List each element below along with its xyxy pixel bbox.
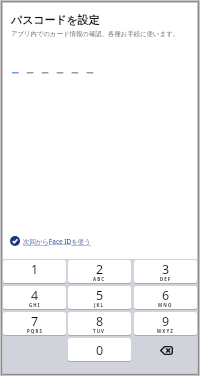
staticText: 5 [96,287,104,304]
staticText: 2 [96,261,104,278]
staticText: TUV [93,328,106,334]
staticText: 7 [31,313,39,330]
button[interactable]: 5 [68,286,131,309]
staticText: アプリ内でのカード情報の確認、各種お手続に使います。 [11,30,180,38]
staticText: 6 [162,287,170,304]
button[interactable]: 9 [134,312,197,335]
button[interactable]: 0 [68,338,131,361]
button[interactable]: 8 [68,312,131,335]
button[interactable]: 3 [134,260,197,283]
button[interactable]: 6 [134,286,197,309]
staticText: WXYZ [157,328,174,334]
staticText: 9 [162,313,170,330]
button[interactable]: Delete [133,336,199,362]
button[interactable]: 7 [3,312,66,335]
staticText: 次回からFace IDを使う [23,237,91,246]
button[interactable]: 2 [68,260,131,283]
staticText: パスコードを設定 [11,14,100,28]
staticText: ABC [93,276,106,282]
staticText: 0 [96,342,104,359]
staticText: 3 [162,261,170,278]
staticText: PQRS [27,328,43,334]
staticText: JKL [94,302,105,308]
staticText: GHI [29,302,41,308]
button[interactable]: 4 [3,286,66,309]
staticText: DEF [160,276,172,282]
staticText: MNO [158,302,173,308]
staticText: 8 [96,313,104,330]
staticText: 1 [31,261,39,278]
button[interactable]: 1 [3,260,66,283]
button[interactable]: 次回からFace IDを使う [10,236,91,246]
staticText: 4 [31,287,39,304]
